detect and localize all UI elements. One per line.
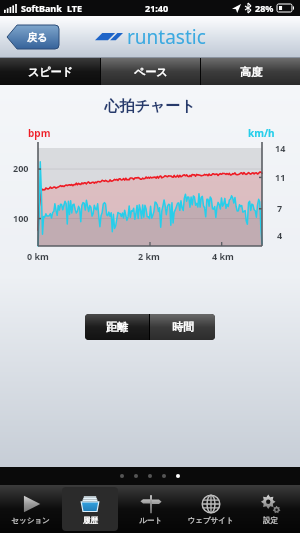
button[interactable]: 時間 <box>150 314 215 340</box>
button[interactable]: 履歴 <box>62 487 118 531</box>
staticText: 200 <box>13 162 29 174</box>
staticText: 2 km <box>138 250 160 262</box>
staticText: 100 <box>13 212 29 224</box>
staticText: SoftBank <box>21 2 62 14</box>
staticText: ルート <box>139 516 162 525</box>
button[interactable]: ウェブサイト <box>182 487 238 531</box>
button[interactable]: スピード <box>0 58 100 85</box>
staticText: runtastic <box>127 24 206 50</box>
staticText: LTE <box>67 2 83 14</box>
button[interactable]: 高度 <box>201 58 300 85</box>
button[interactable]: 戻る <box>7 25 59 49</box>
staticText: 11 <box>275 171 286 183</box>
button[interactable]: 設定 <box>242 487 298 531</box>
staticText: 距離 <box>106 320 128 334</box>
staticText: 14 <box>275 142 286 154</box>
staticText: 0 km <box>27 250 49 262</box>
staticText: 履歴 <box>83 516 98 525</box>
staticText: 心拍チャート <box>0 97 300 116</box>
staticText: スピード <box>28 65 73 79</box>
staticText: 4 km <box>212 250 234 262</box>
staticText: 7 <box>277 202 283 214</box>
staticText: 4 <box>277 229 283 241</box>
staticText: セッション <box>11 516 50 525</box>
staticText: 設定 <box>263 516 278 525</box>
staticText: 戻る <box>27 31 48 44</box>
staticText: bpm <box>28 126 51 140</box>
staticText: 28% <box>255 2 274 14</box>
staticText: 時間 <box>172 320 194 334</box>
staticText: km/h <box>248 126 275 140</box>
button[interactable]: 距離 <box>85 314 149 340</box>
staticText: ウェブサイト <box>187 516 234 525</box>
staticText: 高度 <box>240 65 262 79</box>
staticText: 21:40 <box>145 2 169 14</box>
button[interactable]: ルート <box>122 487 178 531</box>
staticText: ペース <box>134 65 168 79</box>
button[interactable]: ペース <box>101 58 200 85</box>
button[interactable]: セッション <box>2 487 58 531</box>
